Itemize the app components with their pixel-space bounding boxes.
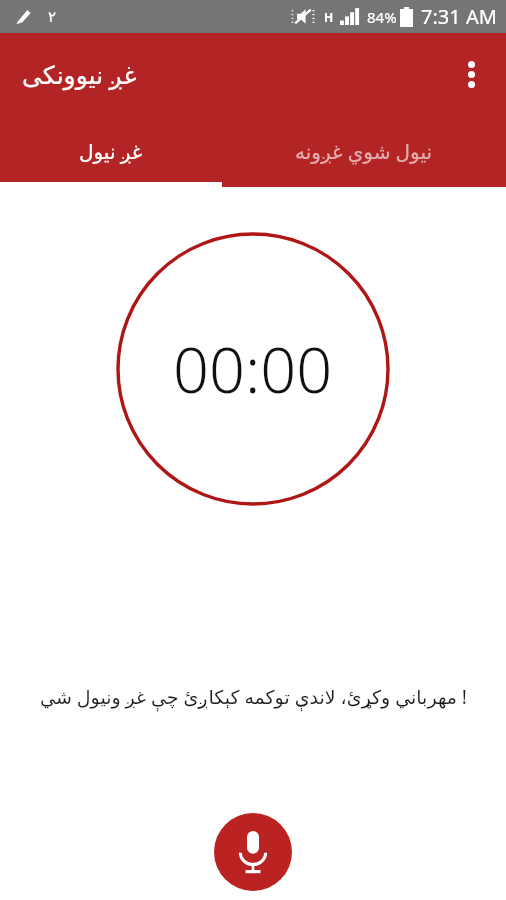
staticText: 84% (367, 7, 397, 27)
button[interactable]: غږ نیول (0, 115, 222, 187)
staticText: H (324, 9, 334, 25)
button[interactable]: نیول شوي غږونه (222, 115, 506, 187)
staticText: 7:31 AM (421, 3, 497, 30)
staticText: ٢ (48, 8, 57, 25)
button[interactable]: غږ نیوونکی (22, 57, 137, 91)
staticText: غږ نیوونکی (22, 57, 137, 91)
staticText: 00:00 (173, 326, 333, 412)
staticText: نیول شوي غږونه (295, 138, 433, 165)
staticText: غږ نیول (79, 138, 143, 165)
button[interactable]: Record (214, 813, 292, 891)
button[interactable]: More options (447, 50, 495, 98)
staticText: مهرباني وکړئ، لاندې توکمه کېکاږئ چې غږ و… (40, 684, 467, 710)
